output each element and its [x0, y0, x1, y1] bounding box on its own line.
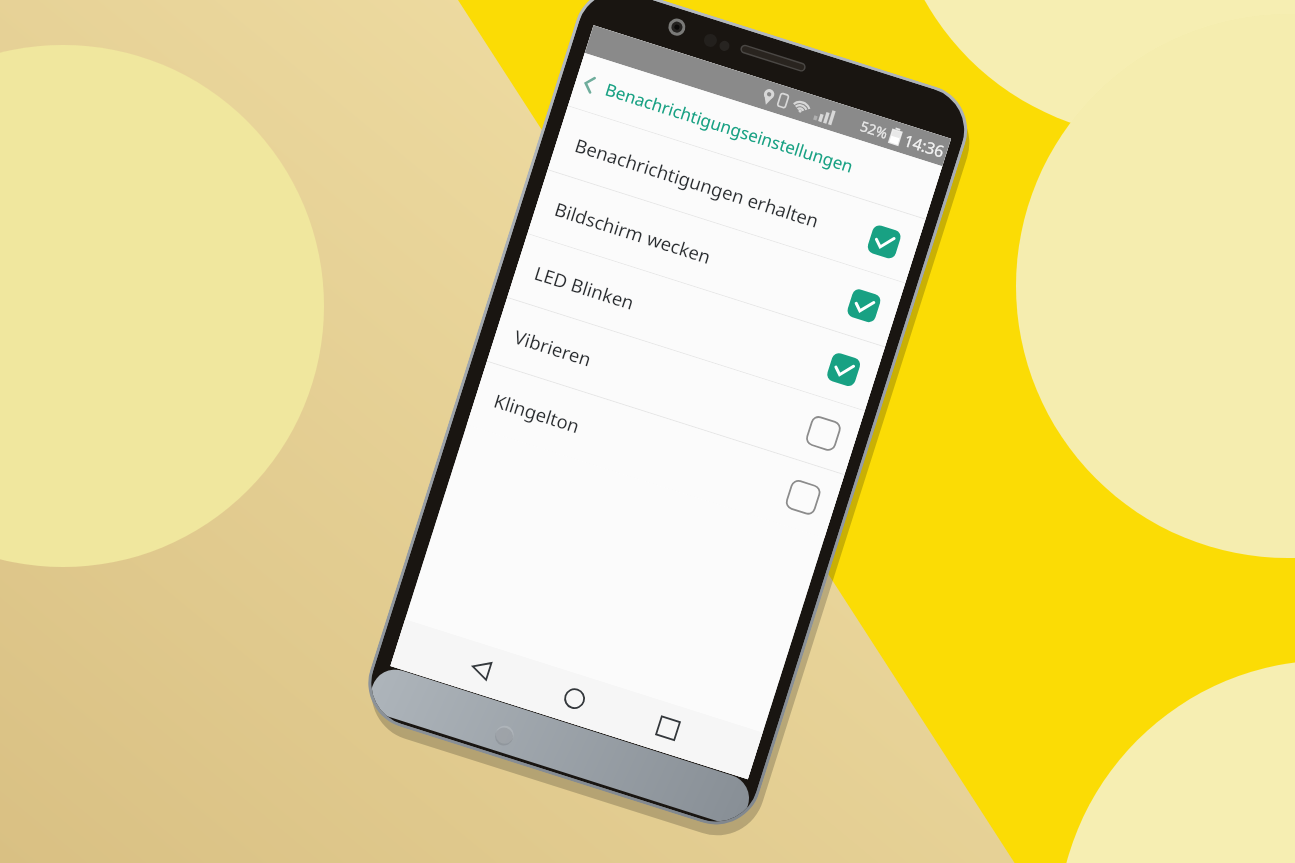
staticText: Bildschirm wecken: [552, 196, 715, 269]
staticText: Benachrichtigungseinstellungen: [602, 78, 856, 178]
button[interactable]: Benachrichtigungen erhalten: [548, 106, 925, 283]
button[interactable]: Back: [570, 61, 607, 107]
staticText: Benachrichtigungen erhalten: [572, 132, 823, 233]
staticText: 52%: [858, 116, 890, 143]
staticText: 14:36: [901, 129, 947, 163]
button[interactable]: Bildschirm wecken: [528, 170, 905, 346]
staticText: LED Blinken: [531, 260, 638, 315]
staticText: Vibrieren: [511, 324, 595, 372]
button[interactable]: Home: [542, 667, 606, 730]
staticText: Klingelton: [491, 388, 583, 438]
button[interactable]: Back: [448, 638, 513, 700]
button[interactable]: Back: [568, 53, 942, 219]
button[interactable]: LED Blinken: [507, 234, 885, 410]
button[interactable]: Recent apps: [635, 697, 700, 759]
button[interactable]: Vibrieren: [487, 298, 864, 474]
button[interactable]: Klingelton: [467, 362, 844, 538]
